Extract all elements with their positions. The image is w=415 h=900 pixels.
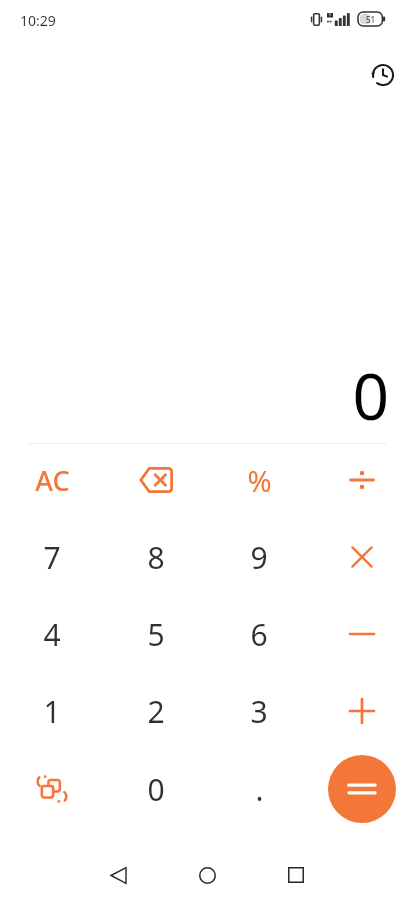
button[interactable]: Unit converter — [9, 753, 95, 825]
button[interactable]: Plus — [319, 675, 405, 747]
button[interactable]: 5 — [113, 598, 199, 670]
button[interactable]: Back — [100, 857, 136, 893]
button[interactable]: 8 — [113, 521, 199, 593]
staticText: 6 — [250, 614, 268, 655]
staticText: 51 — [366, 14, 376, 25]
button[interactable]: Home — [189, 857, 225, 893]
staticText: % — [247, 461, 272, 500]
button[interactable]: Minus — [319, 598, 405, 670]
button[interactable]: AC — [9, 444, 95, 516]
staticText: 2 — [147, 691, 165, 732]
button[interactable]: 3 — [216, 675, 302, 747]
button[interactable]: Divide — [319, 444, 405, 516]
button[interactable]: 2 — [113, 675, 199, 747]
staticText: 1 — [43, 691, 61, 732]
staticText: 5 — [147, 614, 165, 655]
staticText: . — [255, 769, 264, 810]
button[interactable]: . — [216, 753, 302, 825]
staticText: 8 — [147, 537, 165, 578]
button[interactable]: 9 — [216, 521, 302, 593]
staticText: 0 — [147, 769, 165, 810]
staticText: 3 — [250, 691, 268, 732]
button[interactable]: 1 — [9, 675, 95, 747]
button[interactable]: Backspace — [113, 444, 199, 516]
button[interactable]: Equals — [328, 755, 396, 823]
staticText: 10:29 — [20, 11, 56, 30]
staticText: 4 — [43, 614, 61, 655]
staticText: 9 — [250, 537, 268, 578]
button[interactable]: History — [360, 52, 406, 98]
button[interactable]: 0 — [113, 753, 199, 825]
button[interactable]: 7 — [9, 521, 95, 593]
button[interactable]: Multiply — [319, 521, 405, 593]
staticText: 0 — [352, 352, 389, 430]
staticText: 7 — [43, 537, 61, 578]
button[interactable]: Recent apps — [278, 857, 314, 893]
button[interactable]: 4 — [9, 598, 95, 670]
staticText: AC — [35, 462, 70, 499]
button[interactable]: 6 — [216, 598, 302, 670]
button[interactable]: % — [216, 444, 302, 516]
